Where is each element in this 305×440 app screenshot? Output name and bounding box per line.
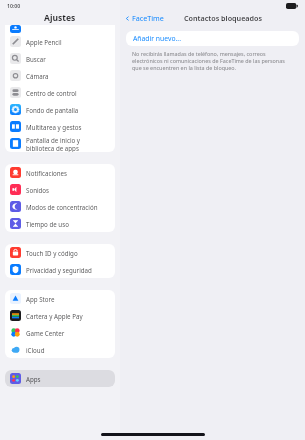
staticText: Sonidos: [26, 186, 50, 194]
staticText: biblioteca de apps: [26, 144, 79, 152]
button[interactable]: Game Center: [5, 324, 115, 341]
staticText: Fondo de pantalla: [26, 106, 79, 114]
staticText: FaceTime: [132, 13, 164, 23]
button[interactable]: Apple Pencil: [5, 33, 115, 50]
staticText: Privacidad y seguridad: [26, 266, 92, 274]
staticText: iCloud: [26, 346, 45, 354]
button[interactable]: FaceTime: [125, 13, 164, 23]
button[interactable]: Buscar: [5, 50, 115, 67]
button[interactable]: Cámara: [5, 67, 115, 84]
staticText: Multitarea y gestos: [26, 123, 82, 131]
button[interactable]: iCloud: [5, 341, 115, 358]
staticText: Añadir nuevo...: [133, 34, 181, 43]
staticText: Cartera y Apple Pay: [26, 312, 83, 320]
staticText: Cámara: [26, 72, 49, 80]
staticText: Centro de control: [26, 89, 77, 97]
button[interactable]: Cartera y Apple Pay: [5, 307, 115, 324]
staticText: Notificaciones: [26, 169, 68, 177]
button[interactable]: Pantalla de inicio y: [5, 135, 115, 152]
staticText: Tiempo de uso: [26, 220, 69, 228]
button[interactable]: Centro de control: [5, 84, 115, 101]
staticText: Modos de concentración: [26, 203, 98, 211]
button[interactable]: Privacidad y seguridad: [5, 261, 115, 278]
button[interactable]: [5, 25, 115, 33]
button[interactable]: Multitarea y gestos: [5, 118, 115, 135]
staticText: Ajustes: [44, 12, 76, 24]
staticText: Pantalla de inicio y: [26, 136, 81, 144]
staticText: App Store: [26, 295, 55, 303]
staticText: Buscar: [26, 55, 46, 63]
button[interactable]: Tiempo de uso: [5, 215, 115, 232]
button[interactable]: Añadir nuevo...: [126, 31, 299, 46]
staticText: No recibirás llamadas de teléfono, mensa…: [132, 50, 295, 71]
button[interactable]: Notificaciones: [5, 164, 115, 181]
button[interactable]: Modos de concentración: [5, 198, 115, 215]
button[interactable]: Touch ID y código: [5, 244, 115, 261]
staticText: 10:00: [7, 2, 21, 9]
button[interactable]: App Store: [5, 290, 115, 307]
button[interactable]: Fondo de pantalla: [5, 101, 115, 118]
button[interactable]: Sonidos: [5, 181, 115, 198]
staticText: Contactos bloqueados: [184, 13, 263, 23]
staticText: Touch ID y código: [26, 249, 78, 257]
button[interactable]: Apps: [5, 370, 115, 387]
staticText: Apple Pencil: [26, 38, 62, 46]
staticText: Apps: [26, 375, 41, 383]
staticText: Game Center: [26, 329, 65, 337]
